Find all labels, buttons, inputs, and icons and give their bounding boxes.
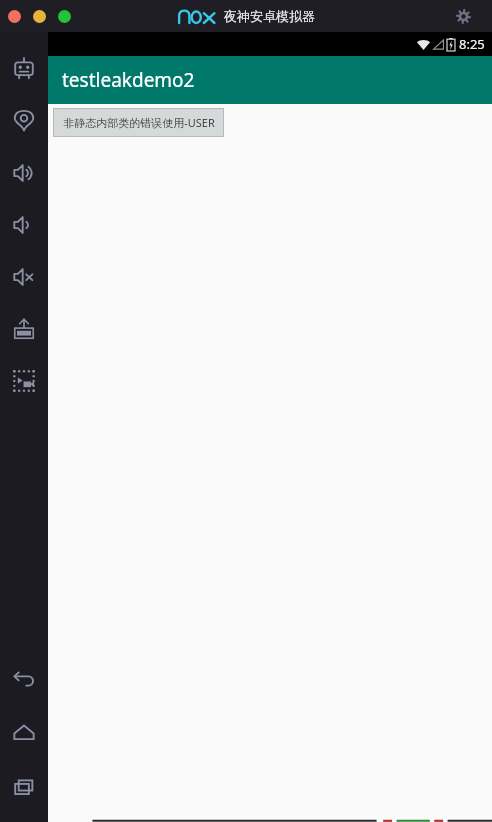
button[interactable]: Volume up [7,156,41,190]
button[interactable]: Robot [7,52,41,86]
button[interactable]: 非静态内部类的错误使用-USER [53,108,224,137]
button[interactable]: Close [8,10,21,23]
button[interactable]: Install APK [7,312,41,346]
staticText: 非静态内部类的错误使用-USER [63,115,215,130]
button[interactable]: Mute [7,260,41,294]
button[interactable]: Location [7,104,41,138]
staticText: 夜神安卓模拟器 [224,8,315,24]
button[interactable]: Recents [7,770,41,804]
button[interactable]: Volume down [7,208,41,242]
button[interactable]: Settings [452,5,474,27]
button[interactable]: Screen record [7,364,41,398]
button[interactable]: Maximise [58,10,71,23]
button[interactable]: Back [7,662,41,696]
button[interactable]: Home [7,716,41,750]
button[interactable]: Minimise [33,10,46,23]
staticText: 8:25 [459,35,485,53]
staticText: testleakdemo2 [62,67,195,93]
